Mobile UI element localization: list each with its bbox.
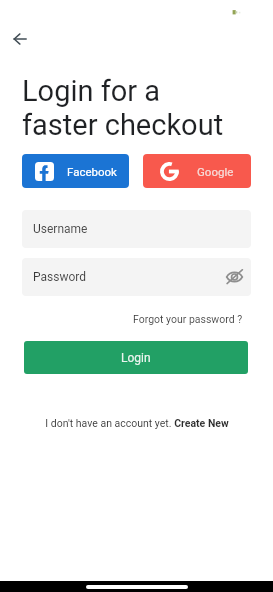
- button[interactable]: Forgot your password ?: [133, 313, 243, 325]
- staticText: Facebook: [67, 165, 117, 178]
- button[interactable]: Show password: [222, 265, 246, 289]
- button[interactable]: I don't have an account yet. Create New: [45, 417, 229, 429]
- staticText: Username: [33, 222, 88, 236]
- button[interactable]: Password: [22, 258, 251, 296]
- button[interactable]: Back: [6, 25, 34, 53]
- button[interactable]: Username: [22, 210, 251, 248]
- staticText: Password: [33, 270, 87, 284]
- staticText: Google: [197, 165, 234, 178]
- staticText: Login: [121, 351, 151, 365]
- staticText: Login for a faster checkout: [22, 74, 273, 142]
- button[interactable]: Login: [24, 341, 248, 374]
- button[interactable]: Facebook: [22, 154, 129, 188]
- button[interactable]: Google: [143, 154, 251, 188]
